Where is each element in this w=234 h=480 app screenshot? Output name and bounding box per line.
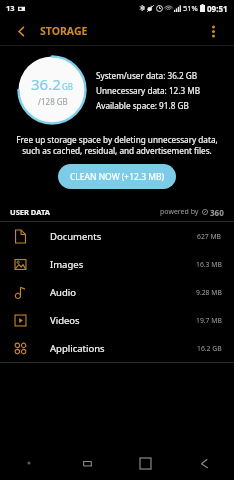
- button[interactable]: Images: [0, 250, 234, 278]
- staticText: Audio: [50, 286, 76, 299]
- staticText: 13: [6, 3, 15, 13]
- staticText: 9.28 MB: [196, 288, 222, 297]
- button[interactable]: More options: [202, 20, 224, 42]
- button[interactable]: Home: [116, 446, 175, 480]
- staticText: powered by: [160, 207, 199, 217]
- staticText: USER DATA: [10, 207, 50, 217]
- button[interactable]: Keyboard: [0, 446, 58, 480]
- button[interactable]: Documents: [0, 222, 234, 250]
- staticText: 09:51: [207, 3, 228, 14]
- staticText: Images: [50, 258, 84, 271]
- staticText: /128 GB: [38, 96, 68, 107]
- button[interactable]: CLEAN NOW (+12.3 MB): [58, 164, 176, 189]
- staticText: Available space: 91.8 GB: [96, 100, 189, 111]
- staticText: GB: [62, 81, 74, 92]
- button[interactable]: Audio: [0, 278, 234, 306]
- staticText: Unnecessary data: 12.3 MB: [96, 85, 201, 96]
- button[interactable]: Recents: [58, 446, 116, 480]
- button[interactable]: Back: [175, 446, 234, 480]
- staticText: 16.2 GB: [197, 344, 222, 353]
- staticText: Documents: [50, 230, 102, 243]
- staticText: STORAGE: [40, 24, 88, 38]
- staticText: Applications: [50, 342, 105, 355]
- button[interactable]: Videos: [0, 306, 234, 334]
- staticText: System/user data: 36.2 GB: [96, 70, 198, 81]
- button[interactable]: Applications: [0, 334, 234, 362]
- staticText: Free up storage space by deleting unnece…: [14, 134, 220, 156]
- staticText: 19.7 MB: [196, 316, 222, 325]
- staticText: CLEAN NOW (+12.3 MB): [70, 171, 165, 183]
- staticText: 627 MB: [197, 232, 222, 241]
- staticText: Videos: [50, 314, 80, 327]
- staticText: 51%: [183, 3, 198, 13]
- button[interactable]: Back: [10, 20, 32, 42]
- staticText: 16.3 MB: [196, 260, 222, 269]
- staticText: 360: [210, 207, 224, 218]
- staticText: 36.2: [31, 74, 61, 94]
